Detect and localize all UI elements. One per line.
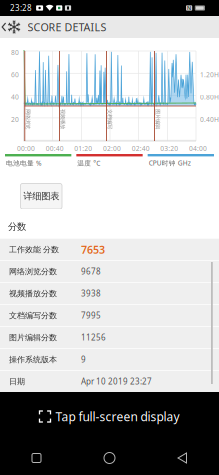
staticText: CPU时钟 GHz	[149, 159, 191, 167]
staticText: 工作效能 分数	[9, 245, 59, 254]
staticText: 7995	[81, 310, 101, 321]
staticText: 03:20	[160, 144, 178, 153]
staticText: 40	[11, 93, 19, 101]
staticText: 60	[11, 70, 19, 79]
staticText: 02:00	[103, 144, 121, 153]
button[interactable]: Back	[0, 16, 8, 38]
staticText: 04:00	[189, 144, 207, 153]
staticText: 温度 °C	[77, 159, 100, 167]
staticText: 分数	[8, 221, 26, 232]
staticText: 视频播放	[66, 109, 86, 116]
staticText: 日期	[9, 377, 25, 386]
staticText: 9678	[81, 266, 101, 277]
button[interactable]: Recents	[0, 443, 73, 473]
staticText: Apr 10 2019 23:27	[81, 376, 152, 387]
staticText: 电池电量 %	[6, 159, 42, 167]
staticText: 详细图表	[23, 190, 59, 202]
staticText: 9	[81, 354, 86, 365]
staticText: 23:28	[10, 3, 32, 13]
staticText: 网络浏览分数	[9, 267, 57, 276]
staticText: 00:40	[46, 144, 64, 153]
staticText: 00:00	[17, 144, 35, 153]
staticText: 3938	[81, 288, 101, 299]
staticText: 图片编辑分数	[9, 333, 57, 342]
staticText: SCORE DETAILS	[28, 20, 107, 34]
staticText: 80	[11, 48, 19, 57]
staticText: 1.20Hz	[200, 70, 219, 79]
staticText: N	[187, 4, 191, 12]
staticText: 操作系统版本	[9, 355, 57, 364]
button[interactable]: 详细图表	[20, 183, 62, 209]
staticText: 02:40	[132, 144, 150, 153]
staticText: 11256	[81, 332, 106, 343]
staticText: 图片编辑	[161, 109, 181, 116]
staticText: 0.80Hz	[200, 93, 219, 101]
staticText: 文档编写分数	[9, 311, 57, 320]
staticText: 01:20	[74, 144, 92, 153]
staticText: 7653	[81, 242, 105, 257]
staticText: 20	[11, 115, 19, 124]
staticText: 0.40Hz	[200, 115, 219, 124]
button[interactable]: Home	[73, 443, 146, 473]
button[interactable]: Back	[146, 443, 219, 473]
staticText: Tap full-screen display	[55, 408, 179, 424]
staticText: 视频播放分数	[9, 289, 57, 298]
